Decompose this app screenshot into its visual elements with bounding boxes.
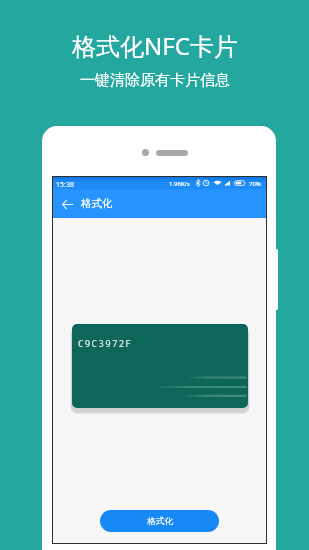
staticText: C9C3972F <box>78 337 133 349</box>
staticText: 一键清除原有卡片信息 <box>80 71 230 90</box>
staticText: 1.96K/s <box>169 180 190 188</box>
staticText: 15:38 <box>56 180 74 190</box>
button[interactable]: Back <box>59 196 75 212</box>
staticText: 格式化 <box>147 516 173 527</box>
staticText: 格式化NFC卡片 <box>72 29 238 62</box>
staticText: 70% <box>249 180 261 188</box>
button[interactable]: C9C3972F <box>72 324 248 408</box>
button[interactable]: 格式化 <box>100 510 219 532</box>
staticText: 格式化 <box>81 197 113 210</box>
